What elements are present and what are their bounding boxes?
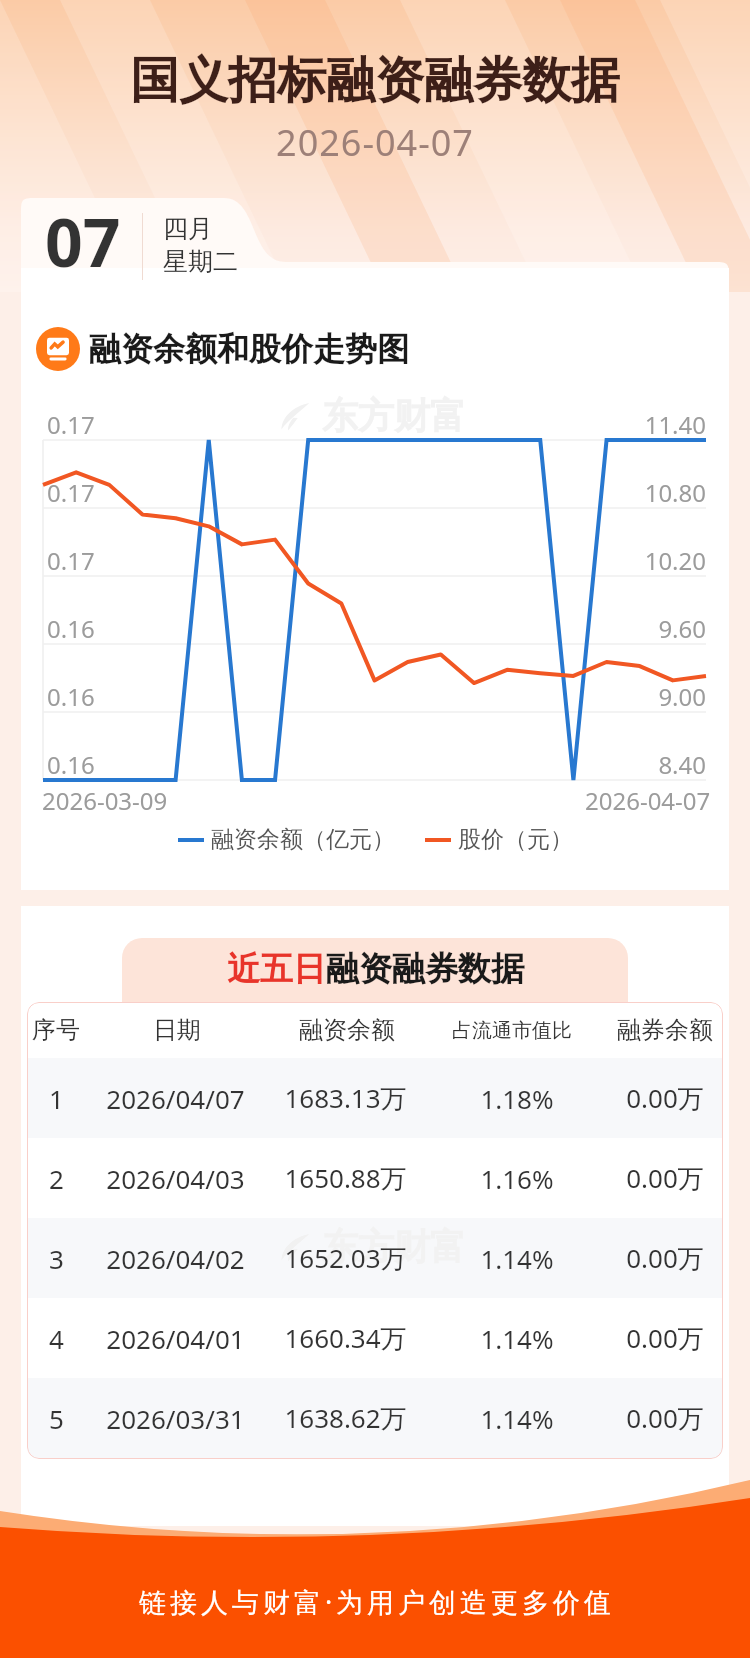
- button[interactable]: [27, 1218, 723, 1298]
- staticText: 融资余额和股价走势图: [89, 329, 409, 369]
- staticText: 3: [49, 1241, 64, 1276]
- staticText: 4: [49, 1321, 64, 1356]
- staticText: 2: [49, 1161, 64, 1196]
- staticText: 2026/04/02: [106, 1241, 245, 1276]
- staticText: 0.00万: [626, 1080, 704, 1116]
- staticText: 2026/04/07: [106, 1081, 245, 1116]
- staticText: 1.18%: [480, 1081, 554, 1116]
- staticText: 10.20: [586, 544, 706, 577]
- staticText: 国义招标融资融券数据: [0, 50, 750, 112]
- staticText: 1638.62万: [284, 1400, 407, 1436]
- staticText: 融券余额: [617, 1015, 713, 1045]
- staticText: 融资余额（亿元）: [211, 825, 395, 854]
- staticText: 近五日: [227, 948, 326, 990]
- staticText: 0.00万: [626, 1160, 704, 1196]
- staticText: 0.16: [47, 680, 95, 713]
- button[interactable]: [27, 1058, 723, 1138]
- staticText: 0.17: [47, 544, 95, 577]
- button[interactable]: [27, 1378, 723, 1458]
- staticText: 10.80: [586, 476, 706, 509]
- staticText: 日期: [153, 1015, 201, 1045]
- staticText: 1650.88万: [284, 1160, 407, 1196]
- staticText: 2026-04-07: [0, 118, 750, 167]
- staticText: 0.16: [47, 748, 95, 781]
- staticText: 2026-04-07: [585, 784, 711, 817]
- staticText: 2026/04/01: [106, 1321, 245, 1356]
- staticText: 1683.13万: [284, 1080, 407, 1116]
- staticText: 1652.03万: [284, 1240, 407, 1276]
- staticText: 1660.34万: [284, 1320, 407, 1356]
- staticText: 股价（元）: [458, 825, 573, 854]
- staticText: 11.40: [586, 408, 706, 441]
- staticText: 东方财富: [322, 393, 466, 438]
- staticText: 序号: [32, 1015, 80, 1045]
- staticText: 9.60: [586, 612, 706, 645]
- staticText: 四月: [163, 213, 213, 244]
- staticText: 2026/03/31: [106, 1401, 245, 1436]
- staticText: 8.40: [586, 748, 706, 781]
- staticText: 1.14%: [480, 1241, 554, 1276]
- staticText: 融资余额: [299, 1015, 395, 1045]
- staticText: 0.16: [47, 612, 95, 645]
- staticText: 2026-03-09: [42, 784, 168, 817]
- staticText: 占流通市值比: [452, 1018, 572, 1043]
- staticText: 东方财富: [322, 1224, 466, 1269]
- staticText: 9.00: [586, 680, 706, 713]
- staticText: 0.17: [47, 476, 95, 509]
- staticText: 星期二: [163, 246, 238, 277]
- staticText: 1.16%: [480, 1161, 554, 1196]
- button[interactable]: [27, 1298, 723, 1378]
- staticText: 0.00万: [626, 1400, 704, 1436]
- staticText: 1.14%: [480, 1401, 554, 1436]
- staticText: 0.00万: [626, 1320, 704, 1356]
- staticText: 07: [45, 196, 121, 286]
- staticText: 融资融券数据: [326, 948, 524, 990]
- button[interactable]: [27, 1138, 723, 1218]
- staticText: 2026/04/03: [106, 1161, 245, 1196]
- staticText: 5: [49, 1401, 64, 1436]
- staticText: 1: [49, 1081, 64, 1116]
- staticText: 1.14%: [480, 1321, 554, 1356]
- staticText: 链接人与财富·为用户创造更多价值: [2, 1583, 750, 1620]
- staticText: 0.17: [47, 408, 95, 441]
- staticText: 0.00万: [626, 1240, 704, 1276]
